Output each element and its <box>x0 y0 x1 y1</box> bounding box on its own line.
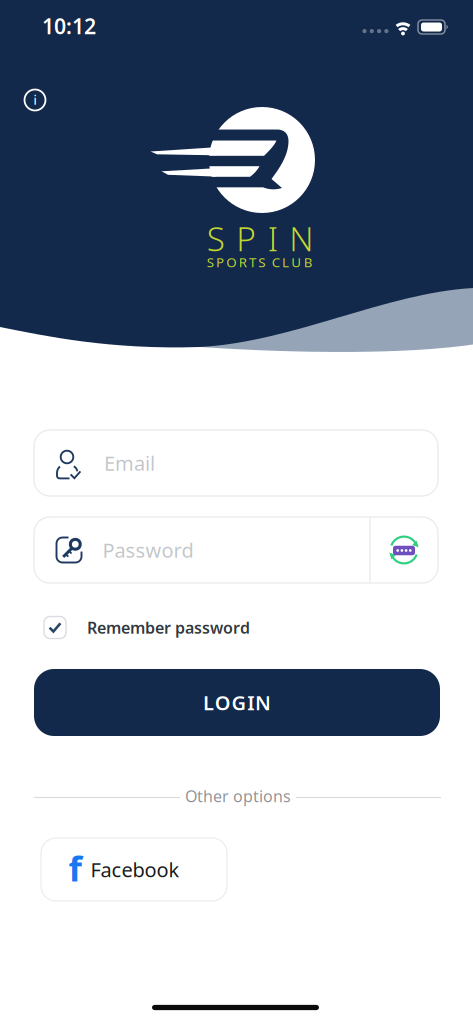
staticText: S <box>258 253 265 271</box>
staticText: R <box>239 253 247 271</box>
staticText: P <box>236 216 256 260</box>
button[interactable] <box>382 528 426 572</box>
staticText: 10:12 <box>42 12 96 40</box>
staticText: S <box>207 253 214 271</box>
staticText: P <box>216 253 224 271</box>
staticText: Email <box>104 450 155 476</box>
staticText: L <box>282 253 289 271</box>
button[interactable]: Remember password <box>44 612 250 642</box>
staticText: N <box>289 216 313 260</box>
staticText: T <box>249 253 256 271</box>
staticText: B <box>304 253 313 271</box>
staticText: O <box>226 253 236 271</box>
staticText: Facebook <box>90 856 179 883</box>
staticText: C <box>272 253 280 271</box>
staticText: I <box>268 216 278 260</box>
button[interactable]: Email <box>34 430 438 496</box>
staticText: i <box>33 92 36 108</box>
staticText: U <box>291 253 301 271</box>
button[interactable]: Password <box>34 517 438 583</box>
staticText: Remember password <box>87 617 250 638</box>
staticText: S <box>207 216 225 260</box>
staticText: Other options <box>185 785 291 807</box>
button[interactable]: i <box>20 85 50 115</box>
staticText: f <box>68 845 81 891</box>
button[interactable]: f <box>41 838 227 901</box>
button[interactable]: LOGIN <box>34 669 440 736</box>
staticText: Password <box>102 537 193 563</box>
staticText: LOGIN <box>203 689 271 716</box>
